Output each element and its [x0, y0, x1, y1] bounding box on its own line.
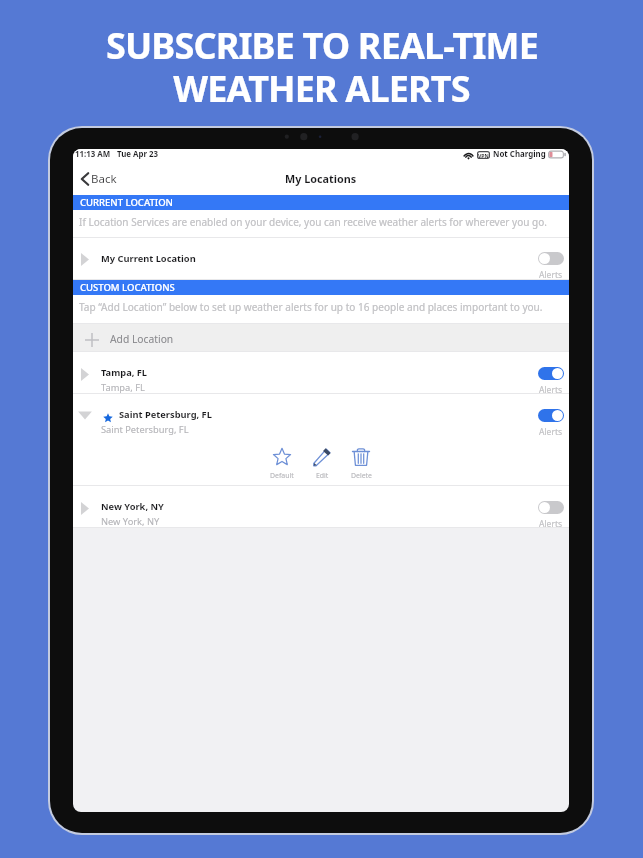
button[interactable]: Alerts off	[538, 501, 564, 514]
button[interactable]: My Current Location	[73, 238, 569, 279]
staticText: Alerts	[539, 269, 563, 281]
staticText: Add Location	[110, 332, 174, 346]
button[interactable]: Delete	[343, 448, 379, 480]
staticText: Saint Petersburg, FL	[119, 408, 212, 421]
staticText: 11:13 AM	[75, 149, 111, 160]
staticText: Saint Petersburg, FL	[101, 423, 189, 436]
staticText: CUSTOM LOCATIONS	[80, 281, 175, 294]
staticText: My Current Location	[101, 252, 196, 265]
staticText: Back	[91, 171, 117, 187]
button[interactable]: Saint Petersburg, FL	[73, 394, 569, 437]
button[interactable]: Alerts off	[538, 252, 564, 265]
staticText: VPN	[478, 152, 489, 159]
staticText: Tue Apr 23	[117, 149, 159, 160]
staticText: New York, NY	[101, 500, 164, 513]
staticText: Delete	[351, 471, 372, 480]
staticText: Alerts	[539, 426, 563, 438]
button[interactable]: Edit	[304, 448, 340, 480]
button[interactable]: Default	[264, 448, 300, 480]
staticText: Alerts	[539, 384, 563, 396]
staticText: SUBSCRIBE TO REAL-TIME	[106, 21, 538, 70]
button[interactable]: Alerts on	[538, 409, 564, 422]
button[interactable]: Alerts on	[538, 367, 564, 380]
staticText: My Locations	[285, 171, 357, 186]
staticText: Default	[270, 471, 294, 480]
button[interactable]: Add Location	[73, 324, 569, 351]
staticText: Edit	[316, 471, 329, 480]
staticText: Not Charging	[493, 149, 546, 160]
button[interactable]: Tampa, FL	[73, 352, 569, 393]
staticText: Tampa, FL	[101, 381, 145, 394]
staticText: WEATHER ALERTS	[173, 64, 470, 113]
button[interactable]: New York, NY	[73, 486, 569, 527]
staticText: CURRENT LOCATION	[80, 196, 173, 209]
staticText: New York, NY	[101, 515, 160, 528]
staticText: Alerts	[539, 518, 563, 530]
staticText: If Location Services are enabled on your…	[79, 215, 547, 229]
staticText: Tampa, FL	[101, 366, 148, 379]
button[interactable]: Back	[78, 168, 120, 190]
staticText: Tap “Add Location” below to set up weath…	[79, 300, 543, 314]
